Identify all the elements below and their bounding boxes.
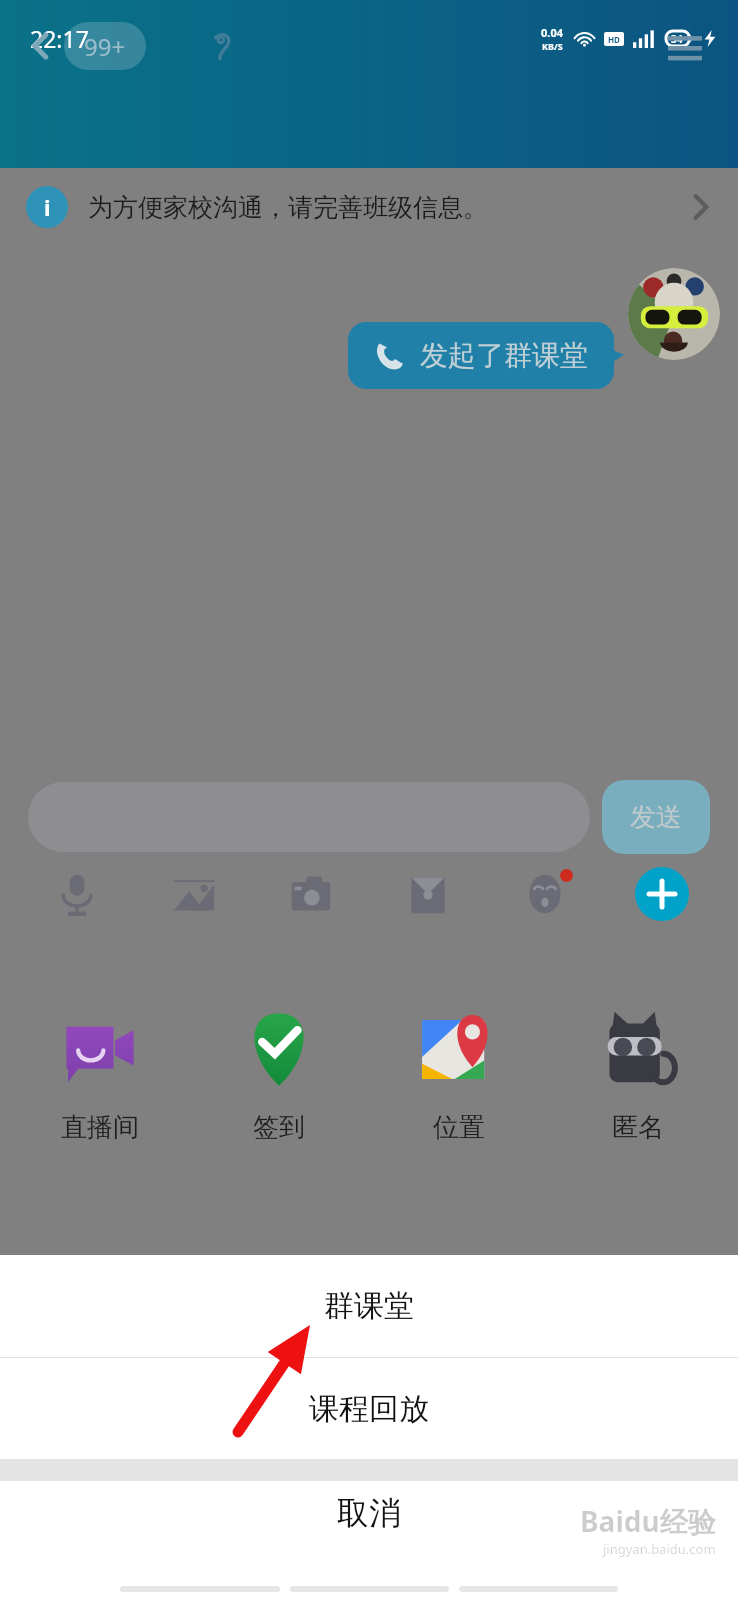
button[interactable]: Voice: [18, 871, 135, 917]
button[interactable]: i: [0, 168, 738, 246]
button[interactable]: Red packet: [369, 871, 486, 917]
button[interactable]: 课程回放: [0, 1358, 738, 1459]
button[interactable]: 群课堂: [0, 1255, 738, 1357]
button[interactable]: 直播间: [20, 1005, 180, 1144]
button[interactable]: 签到: [199, 1005, 359, 1144]
staticText: 发起了群课堂: [420, 338, 588, 373]
staticText: 直播间: [61, 1111, 139, 1144]
staticText: 签到: [253, 1111, 305, 1144]
button[interactable]: Menu: [658, 19, 712, 73]
button[interactable]: Back: [18, 23, 64, 69]
staticText: 0.04: [541, 25, 563, 40]
staticText: 群课堂: [324, 1287, 414, 1325]
staticText: HD: [608, 34, 620, 45]
button[interactable]: 匿名: [558, 1005, 718, 1144]
staticText: 发送: [630, 801, 682, 834]
staticText: 匿名: [612, 1111, 664, 1144]
button[interactable]: More: [603, 867, 720, 921]
staticText: 99+: [84, 30, 126, 63]
button[interactable]: Emoji: [486, 871, 603, 917]
button[interactable]: 位置: [379, 1005, 539, 1144]
button[interactable]: Camera: [252, 871, 369, 917]
button[interactable]: 99+: [84, 22, 126, 70]
staticText: 34: [671, 32, 683, 46]
staticText: 22:17: [30, 23, 89, 54]
staticText: 为方便家校沟通，请完善班级信息。: [88, 192, 488, 223]
staticText: KB/S: [542, 40, 563, 52]
staticText: i: [44, 192, 51, 222]
button[interactable]: [628, 268, 720, 360]
staticText: Baidu经验: [580, 1502, 716, 1540]
button[interactable]: 取消: [0, 1481, 738, 1586]
staticText: 课程回放: [309, 1390, 429, 1428]
button[interactable]: Gallery: [135, 871, 252, 917]
button[interactable]: 发送: [602, 780, 710, 854]
button[interactable]: 发起了群课堂: [348, 322, 614, 389]
staticText: jingyan.baidu.com: [603, 1540, 716, 1558]
button[interactable]: Listen: [198, 23, 244, 69]
staticText: 位置: [433, 1111, 485, 1144]
staticText: 取消: [337, 1493, 401, 1533]
